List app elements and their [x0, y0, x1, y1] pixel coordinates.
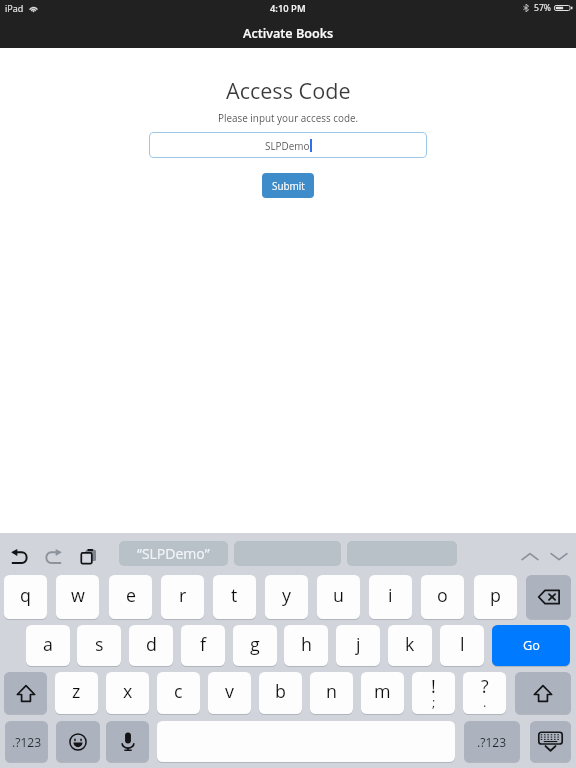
staticText: SLPDemo — [265, 139, 310, 152]
button[interactable]: ! — [412, 672, 455, 714]
staticText: a — [43, 632, 53, 656]
staticText: o — [437, 583, 448, 607]
button[interactable]: Previous field — [518, 544, 542, 568]
button[interactable]: t — [213, 575, 256, 619]
staticText: Access Code — [226, 76, 351, 105]
staticText: Submit — [272, 179, 305, 192]
staticText: d — [146, 632, 157, 656]
button[interactable]: Submit — [262, 173, 314, 198]
staticText: Go — [523, 636, 540, 653]
staticText: x — [123, 679, 133, 703]
button[interactable]: p — [474, 575, 517, 619]
button[interactable]: f — [181, 625, 225, 666]
button[interactable]: w — [56, 575, 99, 619]
staticText: l — [460, 632, 465, 656]
staticText: . — [483, 694, 487, 711]
staticText: q — [20, 583, 31, 607]
staticText: y — [282, 583, 291, 607]
button[interactable]: n — [310, 672, 353, 714]
staticText: w — [71, 583, 85, 607]
staticText: m — [374, 679, 391, 703]
staticText: h — [301, 632, 312, 656]
staticText: r — [179, 583, 187, 607]
button[interactable]: Next field — [547, 544, 571, 568]
button[interactable]: u — [317, 575, 360, 619]
button[interactable]: l — [440, 625, 484, 666]
button[interactable]: i — [369, 575, 412, 619]
staticText: t — [231, 583, 238, 607]
staticText: c — [174, 679, 183, 703]
staticText: z — [72, 679, 81, 703]
staticText: s — [95, 632, 104, 656]
button[interactable]: Dictation — [106, 721, 149, 762]
staticText: p — [490, 583, 501, 607]
button[interactable]: ? — [463, 672, 506, 714]
staticText: 4:10 PM — [270, 2, 306, 15]
button[interactable]: k — [388, 625, 432, 666]
button[interactable]: SLPDemo — [149, 132, 427, 158]
button[interactable]: Backspace — [526, 575, 571, 619]
staticText: Activate Books — [243, 24, 334, 41]
staticText: .?123 — [477, 734, 507, 750]
button[interactable]: v — [208, 672, 251, 714]
staticText: 57% — [534, 2, 551, 14]
staticText: e — [126, 583, 136, 607]
button[interactable]: a — [26, 625, 70, 666]
button[interactable]: b — [259, 672, 302, 714]
button[interactable]: “SLPDemo” — [119, 541, 228, 566]
staticText: v — [225, 679, 234, 703]
button[interactable]: g — [233, 625, 277, 666]
button[interactable]: j — [336, 625, 380, 666]
staticText: j — [356, 632, 361, 656]
staticText: ! — [431, 674, 436, 698]
button[interactable]: Emoji — [56, 721, 100, 762]
button[interactable]: Hide keyboard — [530, 721, 571, 762]
staticText: b — [275, 679, 286, 703]
button[interactable]: z — [55, 672, 98, 714]
button[interactable]: Paste — [76, 544, 100, 568]
button[interactable]: c — [157, 672, 200, 714]
button[interactable]: Redo — [41, 544, 65, 568]
button[interactable]: d — [129, 625, 173, 666]
button[interactable]: Shift — [515, 672, 571, 714]
staticText: Please input your access code. — [218, 111, 359, 124]
button[interactable]: Shift — [4, 672, 47, 714]
staticText: i — [388, 583, 393, 607]
staticText: iPad — [5, 2, 24, 14]
button[interactable]: Numbers and symbols — [5, 721, 48, 762]
button[interactable]: r — [161, 575, 204, 619]
staticText: n — [326, 679, 337, 703]
staticText: ; — [432, 694, 436, 711]
button[interactable]: x — [106, 672, 149, 714]
button[interactable]: o — [421, 575, 464, 619]
button[interactable]: e — [109, 575, 152, 619]
staticText: g — [250, 632, 260, 656]
staticText: .?123 — [12, 734, 42, 750]
button[interactable]: q — [4, 575, 47, 619]
staticText: u — [333, 583, 344, 607]
button[interactable]: y — [265, 575, 308, 619]
staticText: f — [200, 632, 207, 656]
staticText: k — [405, 632, 415, 656]
staticText: “SLPDemo” — [137, 544, 210, 563]
button[interactable]: Go — [492, 625, 570, 666]
staticText: ? — [481, 674, 489, 698]
button[interactable]: Undo — [7, 544, 31, 568]
button[interactable]: h — [284, 625, 328, 666]
button[interactable]: m — [361, 672, 404, 714]
button[interactable]: Numbers and symbols — [464, 721, 520, 762]
button[interactable]: s — [77, 625, 121, 666]
